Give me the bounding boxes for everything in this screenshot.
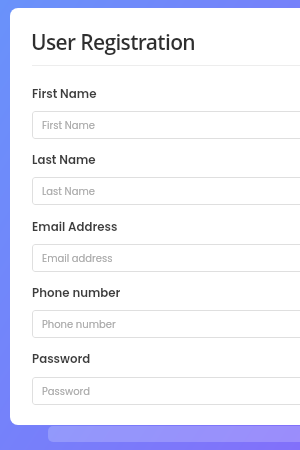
button[interactable]: Email Address (32, 244, 300, 272)
staticText: User Registration (31, 28, 195, 57)
staticText: Phone number (32, 285, 121, 302)
staticText: Last Name (42, 184, 95, 198)
button[interactable]: Password (32, 377, 300, 405)
staticText: Password (32, 351, 91, 368)
staticText: First Name (32, 86, 97, 103)
staticText: Email address (42, 251, 113, 265)
staticText: Last Name (32, 152, 96, 169)
staticText: First Name (42, 118, 96, 132)
staticText: Email Address (32, 219, 118, 236)
staticText: Phone number (42, 317, 116, 331)
staticText: Password (42, 384, 91, 398)
button[interactable]: Last Name (32, 177, 300, 205)
button[interactable]: First Name (32, 111, 300, 139)
button[interactable]: Phone number (32, 310, 300, 338)
